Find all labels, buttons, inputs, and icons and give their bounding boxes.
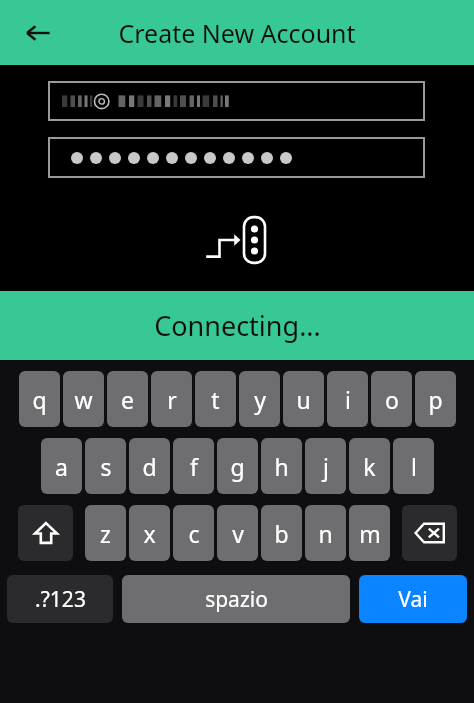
staticText: c (188, 518, 200, 549)
staticText: n (318, 518, 333, 549)
staticText: w (74, 384, 93, 415)
button[interactable]: f (173, 438, 214, 494)
staticText: x (143, 518, 156, 549)
button[interactable]: r (151, 371, 192, 427)
button[interactable]: u (283, 371, 324, 427)
button[interactable]: t (195, 371, 236, 427)
button[interactable]: n (305, 505, 346, 561)
button[interactable]: q (19, 371, 60, 427)
button[interactable]: o (371, 371, 412, 427)
button[interactable]: s (85, 438, 126, 494)
staticText: q (32, 384, 47, 415)
button[interactable]: i (327, 371, 368, 427)
staticText: d (142, 451, 157, 482)
staticText: y (254, 384, 266, 415)
button[interactable]: spazio (122, 575, 350, 623)
staticText: g (230, 451, 245, 482)
staticText: o (385, 384, 399, 415)
button[interactable]: y (239, 371, 280, 427)
button[interactable] (48, 81, 425, 121)
staticText: b (274, 518, 289, 549)
staticText: a (55, 451, 68, 482)
button[interactable]: d (129, 438, 170, 494)
staticText: s (100, 451, 112, 482)
other: Connecting indicator (200, 211, 274, 269)
button[interactable]: h (261, 438, 302, 494)
button[interactable]: .?123 (7, 575, 113, 623)
staticText: l (411, 451, 417, 482)
button[interactable]: e (107, 371, 148, 427)
staticText: k (363, 451, 376, 482)
staticText: m (359, 518, 381, 549)
staticText: .?123 (35, 585, 86, 614)
staticText: Vai (398, 585, 428, 614)
staticText: e (121, 384, 134, 415)
staticText: u (296, 384, 311, 415)
button[interactable]: x (129, 505, 170, 561)
button[interactable]: w (63, 371, 104, 427)
button[interactable]: Vai (359, 575, 467, 623)
button[interactable]: v (217, 505, 258, 561)
button[interactable]: Shift (18, 505, 73, 561)
button[interactable]: Backspace (402, 505, 457, 561)
button[interactable]: p (415, 371, 456, 427)
staticText: i (345, 384, 351, 415)
staticText: Create New Account (118, 16, 356, 50)
staticText: t (211, 384, 220, 415)
staticText: j (323, 451, 329, 482)
button[interactable]: z (85, 505, 126, 561)
button[interactable]: b (261, 505, 302, 561)
staticText: r (167, 384, 177, 415)
staticText: f (190, 451, 198, 482)
button[interactable]: j (305, 438, 346, 494)
button[interactable]: a (41, 438, 82, 494)
button[interactable]: l (393, 438, 434, 494)
button[interactable]: m (349, 505, 390, 561)
button[interactable] (48, 137, 425, 178)
button[interactable]: Back (16, 11, 60, 55)
staticText: h (274, 451, 289, 482)
button[interactable]: c (173, 505, 214, 561)
staticText: v (232, 518, 244, 549)
staticText: p (428, 384, 443, 415)
button[interactable]: k (349, 438, 390, 494)
staticText: Connecting... (154, 307, 321, 344)
staticText: spazio (205, 585, 268, 614)
staticText: z (100, 518, 111, 549)
button[interactable]: g (217, 438, 258, 494)
